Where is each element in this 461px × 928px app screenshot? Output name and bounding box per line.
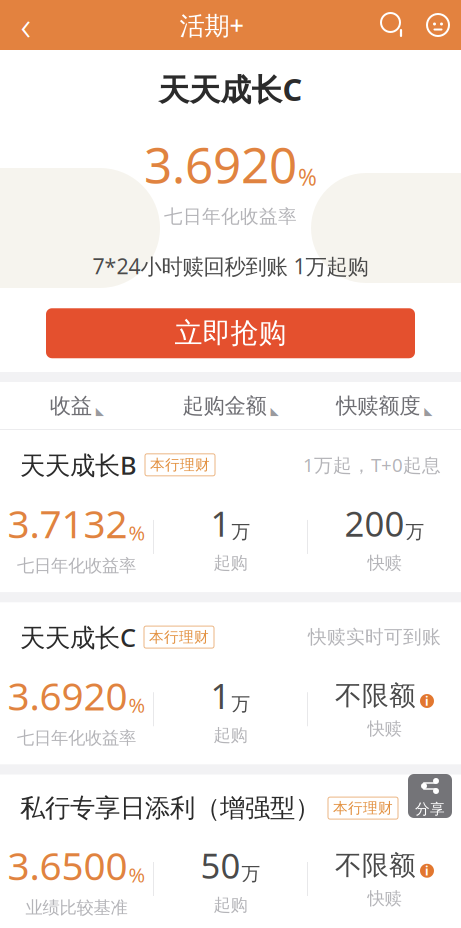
staticText: 分享	[415, 800, 445, 818]
staticText: 快赎	[367, 552, 401, 574]
staticText: i	[425, 693, 429, 709]
staticText: 不限额	[335, 849, 416, 882]
staticText: 1万起，T+0起息	[303, 452, 441, 477]
button[interactable]: 私行专享日添利（增强型）	[0, 775, 461, 928]
staticText: 起购	[213, 725, 247, 746]
staticText: 本行理财	[150, 456, 210, 474]
staticText: 3.6920	[7, 670, 127, 721]
staticText: %	[128, 519, 145, 546]
staticText: 3.7132	[7, 498, 127, 549]
staticText: i	[425, 863, 429, 879]
staticText: 业绩比较基准	[25, 897, 127, 918]
button[interactable]: 天天成长C	[0, 602, 461, 765]
staticText: 起购金额	[182, 393, 266, 419]
staticText: 七日年化收益率	[17, 727, 136, 749]
staticText: ◣	[96, 405, 104, 417]
staticText: 50	[200, 842, 240, 888]
button[interactable]: 立即抢购	[46, 308, 415, 358]
button[interactable]: 收益	[0, 382, 154, 430]
staticText: %	[128, 692, 145, 718]
button[interactable]: 快赎额度	[307, 382, 461, 430]
staticText: 3.6920	[144, 131, 297, 197]
staticText: 收益	[50, 393, 92, 419]
button[interactable]: Customer service	[415, 0, 461, 50]
staticText: 万	[241, 862, 260, 885]
staticText: 快赎实时可到账	[308, 626, 441, 648]
button[interactable]: 起购金额	[154, 382, 307, 430]
staticText: 1	[210, 500, 230, 546]
staticText: 万	[231, 520, 250, 543]
staticText: 1	[210, 673, 230, 719]
staticText: 3.6500	[7, 840, 127, 891]
staticText: 七日年化收益率	[17, 555, 136, 576]
staticText: 起购	[213, 552, 247, 574]
staticText: 起购	[213, 894, 247, 916]
staticText: 本行理财	[149, 628, 209, 646]
staticText: 天天成长C	[158, 69, 302, 109]
staticText: 天天成长C	[20, 620, 136, 654]
staticText: 七日年化收益率	[164, 205, 297, 228]
staticText: 本行理财	[333, 799, 393, 817]
staticText: 快赎	[367, 888, 401, 909]
staticText: 天天成长B	[20, 448, 137, 482]
staticText: ◣	[270, 405, 278, 417]
staticText: 快赎	[367, 718, 401, 739]
staticText: 私行专享日添利（增强型）	[20, 793, 320, 824]
staticText: 快赎额度	[336, 393, 420, 419]
staticText: ‹	[20, 0, 31, 51]
staticText: ◣	[424, 405, 432, 417]
staticText: %	[128, 861, 145, 888]
staticText: 不限额	[335, 679, 416, 712]
button[interactable]: Share	[408, 774, 452, 818]
staticText: 活期+	[179, 8, 243, 42]
staticText: 200	[344, 500, 404, 546]
button[interactable]: Back	[0, 0, 52, 50]
staticText: 7*24小时赎回秒到账 1万起购	[92, 252, 368, 280]
staticText: 万	[231, 693, 250, 716]
button[interactable]: Search	[371, 0, 415, 50]
button[interactable]: 天天成长B	[0, 430, 461, 592]
staticText: 立即抢购	[174, 316, 286, 350]
staticText: %	[298, 162, 317, 192]
staticText: 万	[405, 520, 424, 543]
